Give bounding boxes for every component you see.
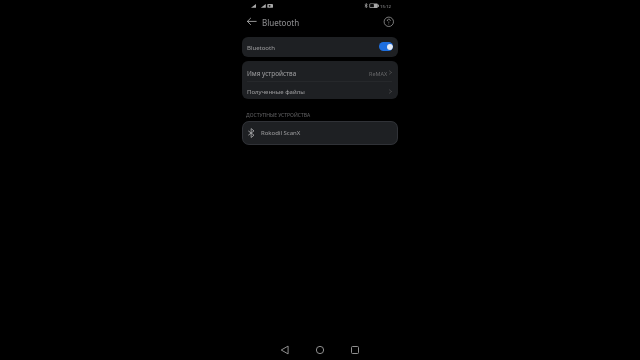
staticText: Rokodil ScanX [261,129,301,137]
button[interactable]: Имя устройства [242,61,398,81]
button[interactable]: Help [382,15,396,29]
button[interactable]: Recent apps [348,343,362,357]
button[interactable]: Полученные файлы [242,81,398,99]
button[interactable]: Bluetooth [242,37,398,57]
staticText: 15:12 [380,3,391,9]
staticText: Имя устройства [247,69,297,78]
button[interactable]: Back [278,343,292,357]
staticText: Полученные файлы [247,88,305,96]
staticText: ДОСТУПНЫЕ УСТРОЙСТВА [246,112,311,119]
staticText: Bluetooth [262,17,300,28]
staticText: Bluetooth [247,44,275,52]
button[interactable]: Rokodil ScanX [242,121,398,145]
button[interactable]: Back [244,14,260,30]
button[interactable]: Home [313,343,327,357]
staticText: ReMAX [369,70,388,77]
